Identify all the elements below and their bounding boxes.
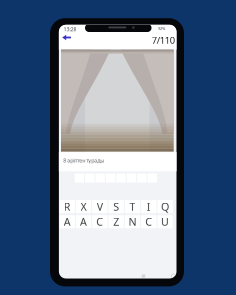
button[interactable]: A <box>60 215 75 228</box>
button[interactable]: Home <box>171 274 176 278</box>
staticText: T <box>129 199 135 214</box>
button[interactable]: C <box>141 215 156 228</box>
button[interactable]: N <box>125 215 140 228</box>
staticText: C <box>145 215 152 229</box>
button[interactable]: C <box>92 215 107 228</box>
button[interactable]: A <box>76 215 91 228</box>
staticText: U <box>161 215 169 229</box>
button[interactable]: U <box>157 215 173 228</box>
button[interactable]: R <box>60 200 75 213</box>
button[interactable]: X <box>76 200 91 213</box>
button[interactable]: V <box>92 200 107 213</box>
button[interactable]: T <box>125 200 140 213</box>
button[interactable]: S <box>108 200 124 213</box>
button[interactable]: Back <box>60 32 73 43</box>
staticText: S <box>113 199 119 214</box>
button[interactable]: Z <box>108 215 124 228</box>
button[interactable]: Q <box>157 200 173 213</box>
staticText: 7/110 <box>152 34 175 46</box>
staticText: R <box>64 199 71 214</box>
staticText: Q <box>161 199 169 214</box>
staticText: C <box>96 215 103 229</box>
staticText: A <box>64 215 71 229</box>
button[interactable]: I <box>141 200 156 213</box>
button[interactable]: Recent apps <box>142 274 145 278</box>
staticText: N <box>128 215 136 229</box>
staticText: 8 әріптен тұрады <box>63 157 104 164</box>
staticText: 92% <box>158 26 165 31</box>
staticText: Z <box>113 215 119 229</box>
staticText: V <box>97 199 103 214</box>
staticText: A <box>80 215 87 229</box>
staticText: I <box>147 199 151 214</box>
staticText: 13:28 <box>63 26 76 33</box>
staticText: X <box>81 199 87 214</box>
